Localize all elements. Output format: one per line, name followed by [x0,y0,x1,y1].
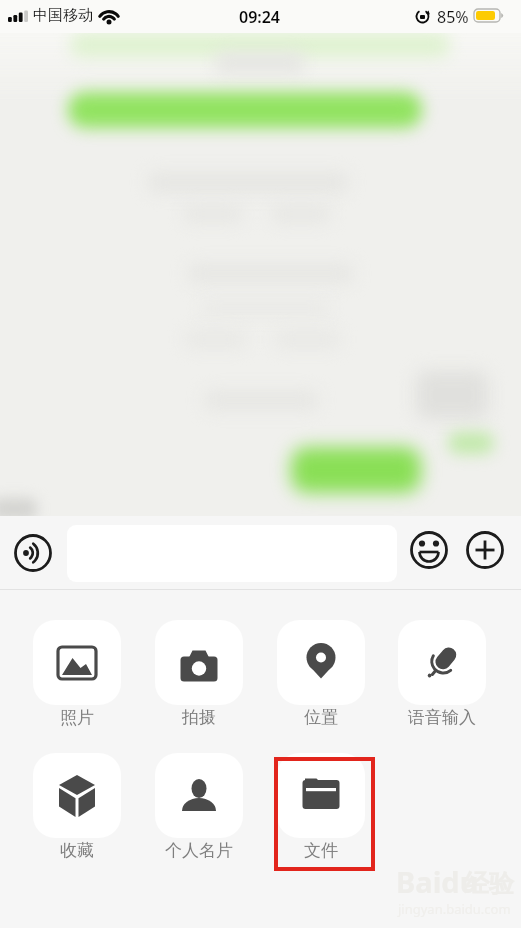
staticText: 文件 [304,840,338,861]
staticText: 语音输入 [408,707,476,728]
staticText: 经验 [464,868,514,899]
staticText: 位置 [304,707,338,728]
button[interactable] [13,533,53,573]
staticText: Baidu [396,862,479,901]
button[interactable] [409,530,449,570]
staticText: 中国移动 [33,6,93,25]
button[interactable] [277,620,365,705]
button[interactable] [277,753,365,838]
button[interactable] [155,753,243,838]
button[interactable] [33,620,121,705]
staticText: 85% [437,6,469,28]
staticText: 个人名片 [165,840,233,861]
staticText: 照片 [60,707,94,728]
staticText: 收藏 [60,840,94,861]
staticText: 09:24 [239,6,281,28]
button[interactable] [155,620,243,705]
staticText: jingyan.baidu.com [398,900,511,918]
button[interactable] [398,620,486,705]
button[interactable] [465,530,505,570]
button[interactable] [33,753,121,838]
staticText: 拍摄 [182,707,216,728]
